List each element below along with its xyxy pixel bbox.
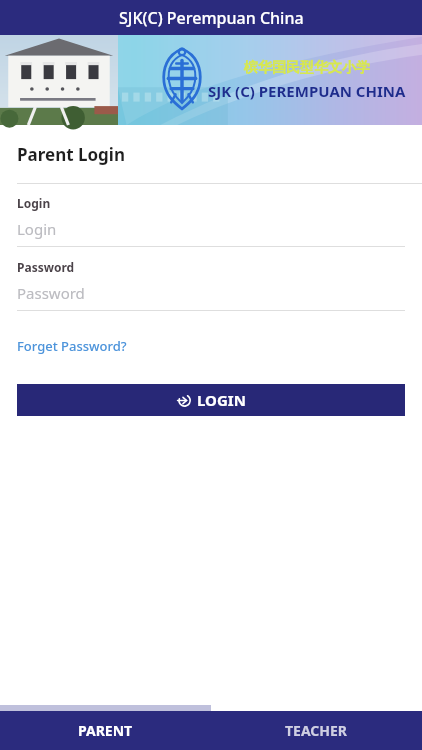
staticText: TEACHER xyxy=(285,721,348,740)
staticText: SJK (C) PEREMPUAN CHINA xyxy=(208,81,406,101)
staticText: PARENT xyxy=(78,721,133,740)
staticText: Parent Login xyxy=(17,143,126,166)
button[interactable]: TEACHER xyxy=(211,711,422,750)
button[interactable]: LOGIN xyxy=(17,384,405,416)
staticText: SJK(C) Perempuan China xyxy=(119,7,304,29)
button[interactable]: PARENT xyxy=(0,711,211,750)
staticText: Login xyxy=(17,219,57,239)
staticText: Forget Password? xyxy=(17,337,127,355)
staticText: Login xyxy=(17,195,51,211)
staticText: 槟华国民型华文小学 xyxy=(244,59,370,77)
staticText: Password xyxy=(17,259,75,275)
staticText: LOGIN xyxy=(197,390,246,410)
staticText: Password xyxy=(17,283,85,303)
button[interactable]: Forget Password? xyxy=(17,337,127,355)
